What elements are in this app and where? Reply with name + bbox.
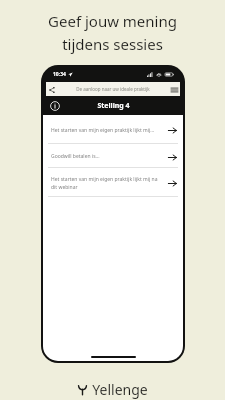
staticText: De aanloop naar uw ideale praktijk: [76, 86, 150, 92]
staticText: Geef jouw mening: [48, 11, 177, 31]
staticText: Yellenge: [92, 380, 148, 399]
staticText: 10:34: [53, 71, 66, 78]
staticText: Stelling 4: [97, 101, 130, 111]
button[interactable]: Info: [48, 99, 61, 112]
staticText: Het starten van mijn eigen praktijk lijk…: [51, 176, 162, 190]
button[interactable]: Menu: [169, 84, 180, 95]
staticText: Het starten van mijn eigen praktijk lijk…: [51, 127, 162, 134]
button[interactable]: Goodwill betalen is...: [48, 146, 178, 167]
button[interactable]: Share: [46, 84, 57, 95]
button[interactable]: Het starten van mijn eigen praktijk lijk…: [48, 170, 178, 196]
staticText: tijdens sessies: [62, 34, 163, 54]
button[interactable]: Het starten van mijn eigen praktijk lijk…: [48, 117, 178, 143]
staticText: Goodwill betalen is...: [51, 153, 162, 160]
